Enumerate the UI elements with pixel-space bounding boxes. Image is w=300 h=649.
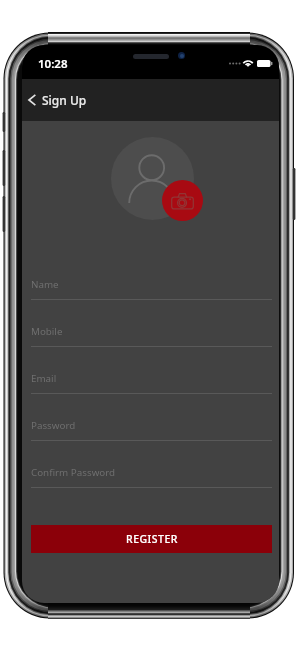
button[interactable]: Email [31,347,272,394]
staticText: Sign Up [42,92,87,108]
button[interactable]: Profile photo [111,137,194,220]
button[interactable]: Confirm Password [31,441,272,488]
staticText: Password [31,419,76,432]
button[interactable]: Name [31,253,272,300]
button[interactable]: Back [22,79,41,121]
button[interactable]: REGISTER [31,525,272,553]
staticText: Email [31,372,57,385]
staticText: 10:28 [38,56,68,72]
staticText: Mobile [31,325,63,338]
button[interactable]: Mobile [31,300,272,347]
staticText: Confirm Password [31,466,116,479]
button[interactable]: Password [31,394,272,441]
staticText: Name [31,278,59,291]
button[interactable]: Change profile photo [162,180,203,221]
staticText: REGISTER [126,532,178,546]
